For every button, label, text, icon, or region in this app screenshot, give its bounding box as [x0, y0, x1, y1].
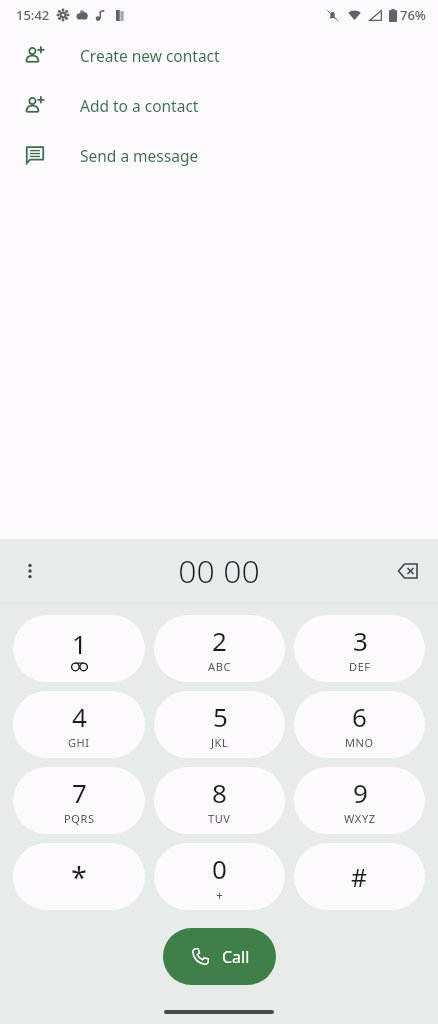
staticText: 15:42 — [16, 6, 50, 24]
staticText: 6 — [352, 699, 367, 734]
staticText: PQRS — [64, 811, 95, 826]
button[interactable]: 1 — [13, 615, 145, 682]
staticText: 76% — [400, 6, 426, 24]
staticText: * — [71, 857, 87, 896]
staticText: MNO — [345, 735, 374, 750]
staticText: 8 — [212, 775, 227, 810]
staticText: Call — [222, 946, 250, 968]
staticText: + — [216, 887, 224, 903]
staticText: 7 — [72, 775, 87, 810]
staticText: Send a message — [80, 145, 199, 166]
button[interactable]: 0 — [154, 843, 285, 910]
button[interactable]: Add to a contact — [0, 80, 438, 130]
button[interactable]: Backspace — [386, 549, 430, 593]
button[interactable]: 7 — [13, 767, 145, 834]
button[interactable]: Create new contact — [0, 30, 438, 80]
button[interactable]: 9 — [294, 767, 425, 834]
staticText: 3 — [353, 623, 368, 658]
staticText: Add to a contact — [80, 95, 199, 116]
button[interactable]: # — [294, 843, 425, 910]
button[interactable]: 2 — [154, 615, 285, 682]
staticText: DEF — [349, 659, 371, 674]
button[interactable]: * — [13, 843, 145, 910]
button[interactable]: 3 — [294, 615, 425, 682]
staticText: WXYZ — [344, 811, 376, 826]
staticText: 0 — [212, 851, 227, 886]
staticText: 9 — [353, 775, 368, 810]
staticText: 5 — [213, 699, 228, 734]
staticText: 2 — [212, 623, 227, 658]
button[interactable]: 6 — [294, 691, 425, 758]
button[interactable]: 4 — [13, 691, 145, 758]
button[interactable]: 5 — [154, 691, 285, 758]
staticText: 00 00 — [178, 549, 260, 593]
button[interactable]: 8 — [154, 767, 285, 834]
staticText: ABC — [208, 659, 231, 674]
button[interactable]: Call — [163, 928, 276, 985]
button[interactable]: More options — [8, 549, 52, 593]
staticText: # — [351, 860, 368, 894]
staticText: 4 — [72, 699, 87, 734]
button[interactable]: Send a message — [0, 130, 438, 180]
staticText: TUV — [208, 811, 231, 826]
staticText: Create new contact — [80, 45, 220, 66]
staticText: 1 — [72, 626, 87, 661]
staticText: GHI — [68, 735, 90, 750]
staticText: JKL — [211, 735, 229, 750]
